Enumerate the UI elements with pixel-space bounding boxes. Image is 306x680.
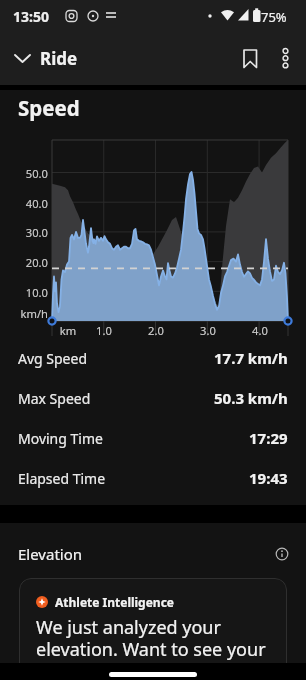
button[interactable]: Max Speed [0,378,306,418]
staticText: km/h [13,306,48,321]
staticText: Max Speed [18,389,91,408]
button[interactable] [8,48,38,70]
staticText: km [48,323,88,338]
staticText: Avg Speed [18,349,88,368]
staticText: 4.0 [240,323,280,338]
staticText: 17:29 [249,428,288,448]
button[interactable]: Athlete Intelligence [19,578,287,680]
staticText: 75% [261,8,287,26]
staticText: 40.0 [13,196,48,211]
button[interactable]: Elapsed Time [0,458,306,498]
button[interactable] [272,44,300,74]
staticText: 1.0 [84,323,124,338]
button[interactable] [236,44,264,74]
staticText: Elevation [18,544,83,564]
staticText: 30.0 [13,225,48,240]
button[interactable]: Moving Time [0,418,306,458]
button[interactable]: Avg Speed [0,338,306,378]
staticText: Elapsed Time [18,469,106,488]
staticText: Athlete Intelligence [55,594,175,610]
staticText: 10.0 [13,285,48,300]
staticText: 20.0 [13,255,48,270]
staticText: Speed [18,94,80,122]
staticText: 13:50 [13,7,49,26]
staticText: 50.3 km/h [214,388,288,408]
staticText: Moving Time [18,429,103,448]
staticText: We just analyzed your elevation. Want to… [36,615,266,680]
button[interactable] [274,546,290,562]
staticText: 19:43 [249,468,288,488]
staticText: 2.0 [136,323,176,338]
staticText: 3.0 [188,323,228,338]
staticText: 50.0 [13,166,48,181]
staticText: Ride [40,47,78,70]
staticText: 17.7 km/h [214,348,288,368]
